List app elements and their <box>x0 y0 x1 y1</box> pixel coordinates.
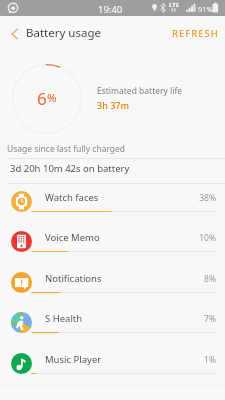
staticText: LTE <box>169 1 180 9</box>
staticText: 3h 37m <box>97 99 129 111</box>
button[interactable]: Watch faces <box>0 190 225 231</box>
staticText: 8% <box>204 273 216 285</box>
staticText: Music Player <box>45 353 102 366</box>
staticText: Notifications <box>45 272 102 285</box>
button[interactable]: S Health <box>0 311 225 352</box>
staticText: 19:40 <box>98 3 123 16</box>
staticText: 7% <box>204 313 216 325</box>
button[interactable]: Music Player <box>0 352 225 393</box>
button[interactable]: Voice Memo <box>0 230 225 271</box>
button[interactable]: REFRESH <box>163 18 225 49</box>
staticText: Usage since last fully charged <box>7 143 126 155</box>
button[interactable]: Notifications <box>0 271 225 312</box>
staticText: REFRESH <box>172 27 219 40</box>
button[interactable]: Navigate up <box>2 16 26 52</box>
staticText: % <box>47 90 57 106</box>
staticText: 10% <box>199 232 216 244</box>
staticText: Estimated battery life <box>97 85 183 97</box>
staticText: Watch faces <box>45 191 99 204</box>
staticText: Battery usage <box>26 25 101 41</box>
staticText: 1% <box>204 354 216 366</box>
staticText: 91% <box>198 4 213 14</box>
staticText: 38% <box>199 192 216 204</box>
staticText: S Health <box>45 312 83 325</box>
staticText: 3d 20h 10m 42s on battery <box>10 162 130 175</box>
staticText: Voice Memo <box>45 231 100 244</box>
staticText: 6 <box>37 87 47 110</box>
